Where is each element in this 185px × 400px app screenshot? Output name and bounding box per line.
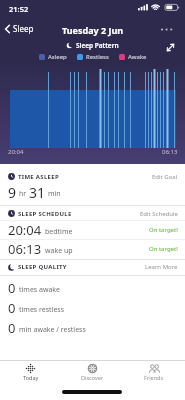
staticText: 0: [8, 319, 16, 337]
staticText: SLEEP QUALITY: [18, 263, 67, 271]
staticText: TIME ASLEEP: [18, 173, 59, 181]
button[interactable]: [165, 42, 176, 53]
button[interactable]: Sleep: [4, 23, 34, 34]
staticText: Edit Schedule: [140, 210, 178, 218]
button[interactable]: 20:04: [0, 221, 185, 239]
button[interactable]: [160, 28, 174, 31]
staticText: wake up: [45, 246, 73, 256]
staticText: Today: [23, 374, 39, 381]
button[interactable]: Discover: [61, 361, 123, 381]
staticText: 20:04: [8, 221, 42, 239]
button[interactable]: Friends: [123, 361, 185, 381]
staticText: Discover: [81, 374, 104, 381]
staticText: On target!: [149, 226, 178, 234]
staticText: Sleep: [13, 23, 34, 34]
staticText: hr: [19, 189, 27, 199]
staticText: times awake: [19, 285, 61, 295]
button[interactable]: SLEEP QUALITY: [8, 262, 178, 272]
staticText: 0: [8, 279, 16, 297]
button[interactable]: SLEEP SCHEDULE: [8, 209, 178, 218]
staticText: times restless: [19, 305, 65, 315]
staticText: 21:52: [9, 4, 29, 14]
staticText: 20:04: [8, 148, 24, 156]
staticText: bedtime: [45, 227, 73, 237]
button[interactable]: 06:13: [0, 240, 185, 257]
button[interactable]: Today: [0, 361, 61, 381]
staticText: 06:13: [8, 240, 42, 257]
staticText: SLEEP SCHEDULE: [18, 210, 72, 218]
staticText: Tuesday 2 Jun: [62, 24, 124, 36]
staticText: 0: [8, 299, 16, 317]
staticText: Awake: [128, 53, 147, 61]
staticText: On target!: [149, 245, 178, 253]
staticText: Edit Goal: [152, 173, 178, 181]
button[interactable]: TIME ASLEEP: [8, 172, 178, 181]
staticText: Restless: [86, 53, 109, 61]
staticText: 9: [8, 183, 17, 200]
staticText: min awake / restless: [19, 325, 86, 335]
staticText: 06:13: [162, 148, 178, 156]
staticText: min: [48, 189, 61, 199]
staticText: Sleep Pattern: [76, 41, 119, 50]
staticText: Friends: [144, 374, 164, 381]
staticText: 31: [29, 183, 46, 200]
staticText: Learn More: [145, 263, 178, 271]
staticText: Asleep: [48, 53, 67, 61]
